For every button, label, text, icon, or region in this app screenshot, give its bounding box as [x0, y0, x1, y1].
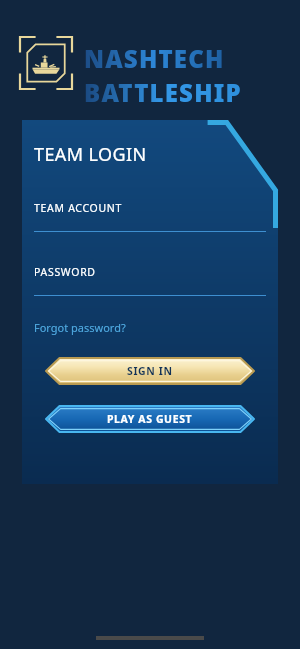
staticText: TEAM ACCOUNT	[34, 201, 123, 215]
staticText: PASSWORD	[34, 265, 96, 279]
staticText: PLAY AS GUEST	[107, 412, 193, 426]
staticText: TEAM LOGIN	[34, 142, 147, 167]
button[interactable]: PLAY AS GUEST	[46, 406, 254, 432]
staticText: SIGN IN	[127, 364, 173, 378]
staticText: Forgot password?	[34, 320, 126, 335]
button[interactable]: Forgot password?	[34, 320, 126, 335]
staticText: BATTLESHIP	[84, 76, 242, 109]
staticText: NASHTECH	[84, 42, 225, 75]
button[interactable]: SIGN IN	[46, 358, 254, 384]
